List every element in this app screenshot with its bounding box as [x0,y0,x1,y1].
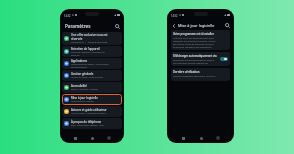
staticText: Astuces utiles • Nouvelles fonctions [71,112,106,115]
staticText: des bugs et ajoute de nouvelles fonction… [173,43,214,46]
staticText: À propos du téléphone [71,120,102,124]
staticText: Votre programme est à installer [173,32,214,36]
staticText: Téléchargez et installez [71,100,94,103]
button[interactable]: Recents [215,135,221,141]
staticText: Dernière vérification effectuée le 12 ma… [173,75,216,78]
staticText: Une offre exclusive vous est [71,33,108,37]
button[interactable]: Home [198,135,204,141]
button[interactable]: Toggle auto download [220,57,228,61]
button[interactable]: Votre programme est à installer [171,30,230,50]
button[interactable]: Une offre exclusive vous est [62,32,122,45]
button[interactable]: Search [113,22,121,30]
staticText: 14:32 [64,14,71,17]
button[interactable]: Search [223,21,231,29]
staticText: Applications [71,59,88,63]
staticText: Mise à jour logicielle [178,23,215,28]
button[interactable]: Home [89,135,95,141]
staticText: Entretien de l'appareil [71,47,100,51]
button[interactable]: Accessibilité [62,82,122,93]
staticText: votre vie [71,54,80,57]
button[interactable]: Télécharger automatiquement via Wi-Fi [171,52,230,66]
staticText: Langue et clavier • Date et heure [71,76,104,79]
staticText: Une mise à jour est disponible pour votr… [173,37,214,40]
staticText: Relief • Contraste • Visibilité [71,88,98,91]
staticText: Applications par défaut • Autorisations [71,63,109,66]
staticText: téléphone. Elle améliore la stabilité, c… [173,40,216,43]
staticText: jour logicielles lorsque l'appareil est [173,62,209,64]
staticText: Stockage • Batterie • Protection de [71,51,105,54]
button[interactable]: Recents [106,135,112,141]
staticText: Astuces et guide utilisateur [71,108,107,112]
staticText: Découvrez-la • Offre personnalisée [71,41,108,44]
staticText: Télécharger automatiquement les mises à [173,59,215,62]
staticText: État • Informations légales • Nom [71,124,104,127]
staticText: Dernière vérification [173,70,200,74]
staticText: des applications [71,66,87,69]
staticText: Accessibilité [71,84,87,88]
staticText: Gestion générale [71,72,94,76]
staticText: Paramètres [65,23,91,29]
button[interactable]: Entretien de l'appareil [62,46,122,57]
staticText: réservée [71,37,83,41]
button[interactable]: Back [180,135,186,141]
staticText: de sécurité. Installez-la dès maintenant [173,46,212,48]
button[interactable]: Gestion générale [62,70,122,81]
staticText: Mise à jour logicielle [71,96,98,100]
button[interactable]: Back [170,22,177,29]
staticText: 14:32 [171,14,178,17]
button[interactable]: Dernière vérification [171,68,230,81]
button[interactable]: Mise à jour logicielle [62,94,122,105]
button[interactable]: Applications [62,58,122,69]
staticText: Télécharger automatiquement via Wi-Fi [173,54,218,58]
button[interactable]: Back [72,135,78,141]
button[interactable]: Astuces et guide utilisateur [62,106,122,117]
button[interactable]: À propos du téléphone [62,118,122,129]
